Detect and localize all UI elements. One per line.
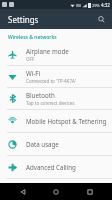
button[interactable]: Recents — [79, 183, 101, 200]
staticText: Bluetooth — [26, 91, 55, 99]
staticText: Airplane mode — [26, 47, 69, 55]
staticText: 4:32 — [101, 2, 110, 8]
staticText: Wi-Fi — [26, 69, 41, 77]
button[interactable]: Back — [12, 183, 34, 200]
staticText: Advanced Calling — [26, 163, 76, 171]
button[interactable]: Wi-Fi — [0, 66, 112, 87]
staticText: Mobile Hotspot & Tethering — [26, 117, 107, 125]
button[interactable]: Home — [45, 183, 67, 200]
staticText: OFF — [26, 56, 35, 62]
button[interactable]: Bluetooth — [0, 88, 112, 109]
staticText: Wireless & networks — [8, 34, 57, 41]
button[interactable]: Airplane mode — [0, 44, 112, 65]
staticText: 29% — [92, 3, 100, 8]
button[interactable]: Search — [93, 11, 109, 27]
button[interactable]: Mobile Hotspot & Tethering — [0, 110, 112, 132]
staticText: Data usage — [26, 140, 59, 148]
staticText: Tap to connect devices — [26, 100, 75, 106]
button[interactable]: Data usage — [0, 133, 112, 155]
staticText: Settings — [8, 14, 39, 25]
button[interactable]: Advanced Calling — [0, 156, 112, 178]
staticText: Connected to 'TP-4K7A' — [26, 78, 76, 84]
